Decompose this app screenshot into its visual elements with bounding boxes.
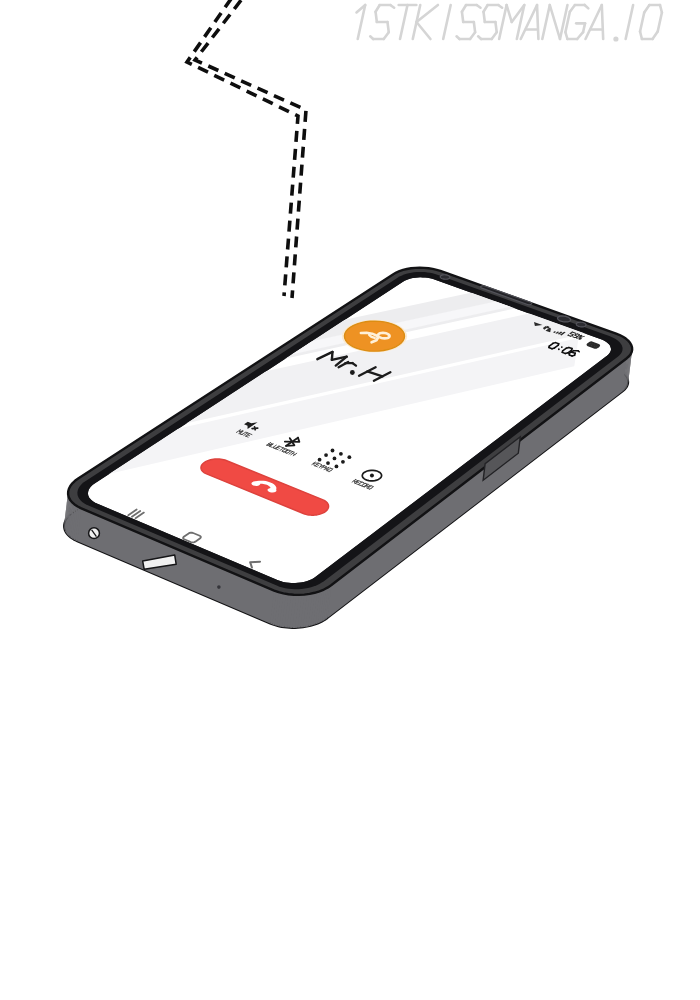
button[interactable]: End call xyxy=(0,0,700,1000)
